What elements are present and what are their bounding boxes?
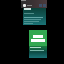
button[interactable]: [29, 30, 47, 46]
button[interactable]: [23, 8, 46, 25]
button[interactable]: [29, 46, 47, 58]
button[interactable]: Search: [21, 0, 47, 8]
